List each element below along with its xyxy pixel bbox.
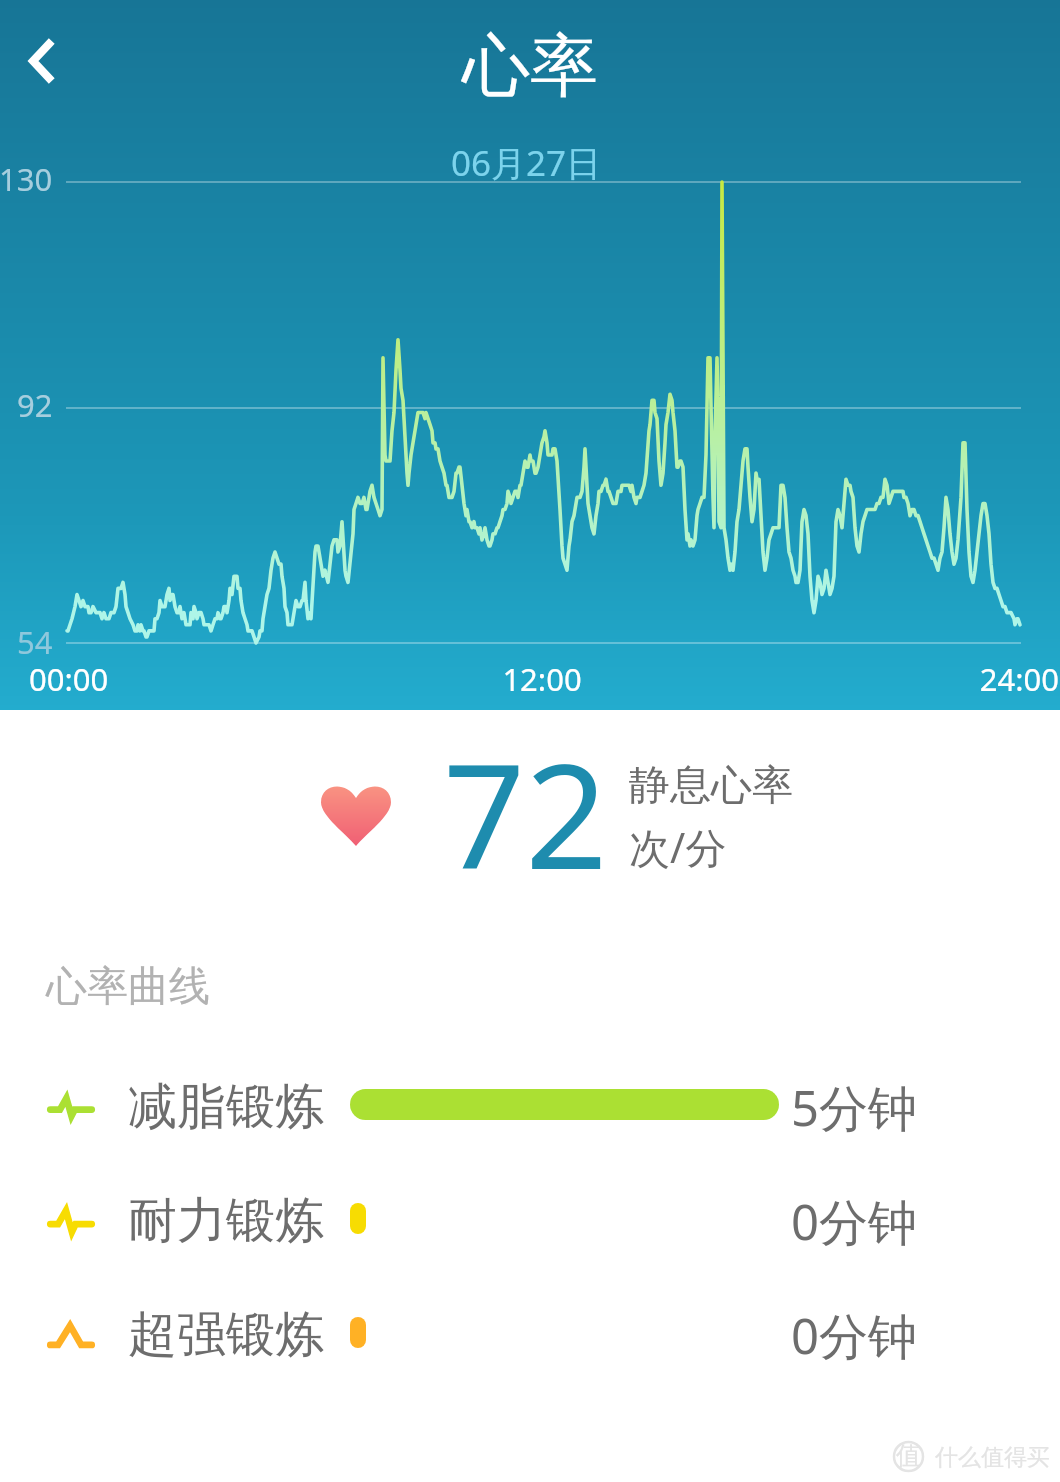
staticText: 减脂锻炼: [128, 1076, 324, 1138]
staticText: 130: [0, 158, 53, 200]
staticText: 心率: [0, 24, 1060, 110]
button[interactable]: 超强锻炼: [0, 1278, 1060, 1392]
staticText: 06月27日: [0, 139, 1056, 187]
button[interactable]: 耐力锻炼: [0, 1164, 1060, 1278]
button[interactable]: Back: [9, 29, 73, 93]
staticText: 0分钟: [791, 1302, 918, 1369]
staticText: 什么值得买: [935, 1443, 1050, 1472]
staticText: 心率曲线: [46, 961, 210, 1013]
staticText: 54: [17, 621, 53, 663]
staticText: 12:00: [12, 658, 1060, 700]
staticText: 00:00: [29, 658, 109, 700]
staticText: 静息心率: [629, 760, 793, 812]
staticText: 92: [17, 384, 53, 426]
staticText: 值: [896, 1440, 921, 1471]
staticText: 次/分: [629, 819, 727, 875]
staticText: 耐力锻炼: [128, 1190, 324, 1252]
staticText: 72: [443, 715, 608, 911]
button[interactable]: 减脂锻炼: [0, 1050, 1060, 1164]
staticText: 5分钟: [791, 1074, 918, 1141]
staticText: 0分钟: [791, 1188, 918, 1255]
staticText: 超强锻炼: [128, 1304, 324, 1366]
staticText: 24:00: [0, 658, 1059, 700]
